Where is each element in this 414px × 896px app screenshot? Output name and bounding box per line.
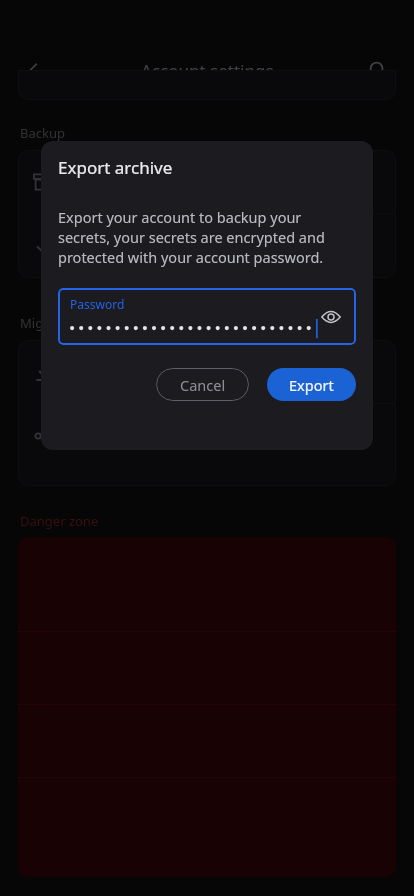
staticText: Password <box>70 296 125 312</box>
staticText: Cancel <box>180 375 226 395</box>
button[interactable]: Verify backup <box>18 214 396 277</box>
staticText: Import from another app <box>72 362 250 382</box>
staticText: Export <box>289 375 334 395</box>
staticText: Export archive <box>72 172 173 192</box>
staticText: Danger zone <box>20 512 99 530</box>
staticText: Export your account to backup your secre… <box>58 207 353 267</box>
button[interactable]: Import from another app <box>18 340 396 403</box>
button[interactable]: Cancel <box>156 368 249 401</box>
button[interactable]: Search <box>360 52 396 88</box>
staticText: Export archive <box>58 156 173 179</box>
button[interactable]: Password <box>58 288 356 345</box>
staticText: Migration <box>20 314 80 332</box>
staticText: Backup <box>20 124 65 142</box>
staticText: Verify backup <box>72 236 168 256</box>
button[interactable]: Export archive <box>18 150 396 213</box>
button[interactable]: Show password <box>314 300 348 334</box>
button[interactable]: Back <box>16 52 52 88</box>
staticText: Account settings <box>141 59 274 82</box>
button[interactable]: Move your data to another app <box>18 404 396 467</box>
button[interactable]: Export <box>267 368 356 401</box>
